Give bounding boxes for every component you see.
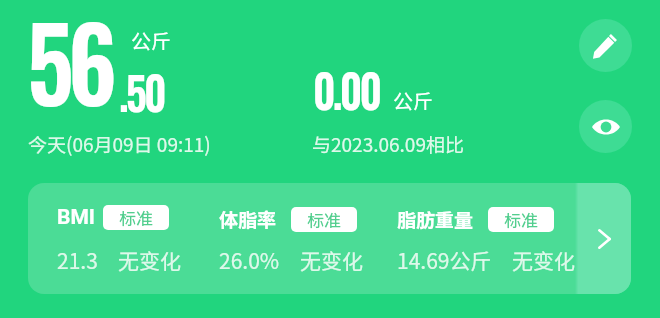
button[interactable]: More details bbox=[577, 183, 631, 294]
staticText: 公斤 bbox=[131, 26, 171, 55]
staticText: 与2023.06.09相比 bbox=[312, 130, 464, 158]
staticText: 21.3 bbox=[57, 245, 98, 275]
button[interactable]: BMI bbox=[28, 183, 631, 294]
staticText: 0.00 bbox=[313, 56, 379, 123]
staticText: 无变化 bbox=[118, 245, 181, 275]
staticText: .50 bbox=[119, 58, 164, 125]
button[interactable]: Show details bbox=[579, 100, 632, 153]
staticText: 26.0% bbox=[219, 245, 280, 275]
staticText: 无变化 bbox=[300, 245, 363, 275]
staticText: 无变化 bbox=[512, 245, 575, 275]
staticText: 标准 bbox=[504, 207, 538, 232]
staticText: 今天(06月09日 09:11) bbox=[28, 130, 211, 158]
staticText: 56 bbox=[27, 0, 112, 136]
staticText: 14.69公斤 bbox=[397, 245, 492, 275]
staticText: 标准 bbox=[307, 207, 341, 232]
staticText: 脂肪重量 bbox=[397, 205, 474, 233]
staticText: 标准 bbox=[119, 205, 153, 230]
staticText: BMI bbox=[57, 205, 95, 230]
staticText: 体脂率 bbox=[219, 205, 277, 233]
button[interactable]: Edit weight bbox=[579, 19, 632, 72]
staticText: 公斤 bbox=[393, 86, 433, 115]
